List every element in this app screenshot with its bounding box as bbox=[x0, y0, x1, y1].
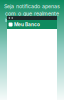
staticText: Meu Banco bbox=[14, 22, 40, 27]
staticText: Seja notificado apenas bbox=[4, 3, 60, 9]
staticText: com o que realmente interessa bbox=[5, 10, 59, 23]
